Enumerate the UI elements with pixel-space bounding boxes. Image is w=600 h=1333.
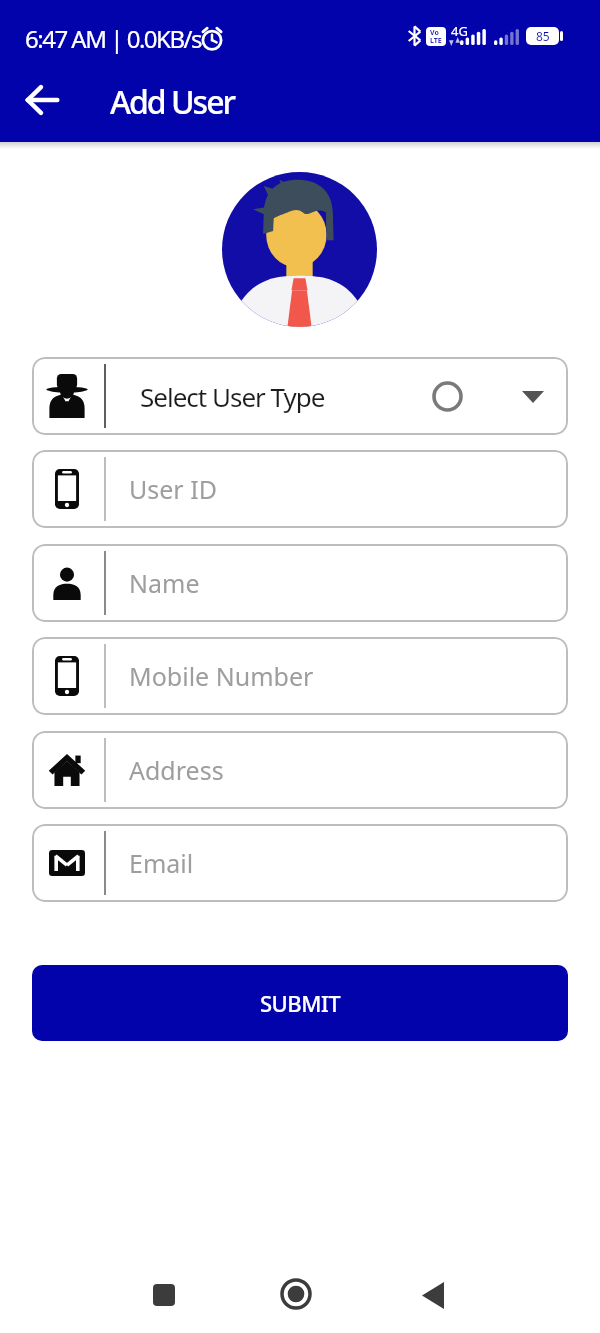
button[interactable] bbox=[222, 172, 377, 327]
button[interactable] bbox=[280, 1278, 312, 1310]
staticText: Vo LTE bbox=[430, 28, 442, 45]
staticText: Address bbox=[129, 753, 224, 787]
button[interactable]: Mobile Number bbox=[32, 637, 568, 715]
button[interactable]: Select User Type bbox=[32, 357, 568, 435]
button[interactable]: SUBMIT bbox=[32, 965, 568, 1041]
staticText: Email bbox=[129, 846, 194, 880]
staticText: User ID bbox=[129, 472, 217, 506]
staticText: 6:47 AM | 0.0KB/s bbox=[25, 22, 201, 55]
staticText: Add User bbox=[110, 80, 235, 124]
staticText: SUBMIT bbox=[260, 988, 341, 1018]
button[interactable] bbox=[153, 1284, 175, 1306]
button[interactable] bbox=[420, 1281, 446, 1309]
button[interactable]: Name bbox=[32, 544, 568, 622]
staticText: Select User Type bbox=[140, 379, 325, 414]
button[interactable]: Address bbox=[32, 731, 568, 809]
button[interactable]: User ID bbox=[32, 450, 568, 528]
button[interactable] bbox=[18, 76, 66, 124]
staticText: 85 bbox=[536, 28, 550, 44]
staticText: 4G bbox=[451, 22, 468, 40]
staticText: Name bbox=[129, 566, 200, 600]
button[interactable]: Email bbox=[32, 824, 568, 902]
staticText: Mobile Number bbox=[129, 659, 314, 693]
